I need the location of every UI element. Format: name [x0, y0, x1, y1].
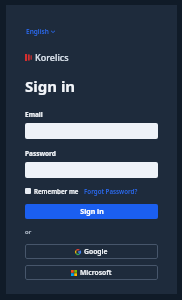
button[interactable]: Forgot Password? — [84, 187, 138, 195]
staticText: English — [26, 27, 49, 36]
staticText: Email — [25, 110, 43, 119]
staticText: Google — [84, 247, 108, 256]
staticText: Sign in — [80, 207, 104, 217]
staticText: Password — [25, 149, 56, 158]
staticText: Forgot Password? — [84, 187, 138, 195]
button[interactable]: English — [25, 26, 56, 37]
staticText: Sign in — [25, 76, 76, 96]
button[interactable]: Sign in — [25, 204, 158, 219]
button[interactable]: Google — [25, 244, 158, 259]
button[interactable]: Microsoft — [25, 265, 158, 280]
staticText: Remember me — [34, 187, 79, 195]
staticText: or — [25, 228, 32, 236]
button[interactable] — [25, 123, 158, 139]
staticText: Microsoft — [80, 268, 112, 277]
button[interactable]: Remember me — [25, 187, 79, 195]
button[interactable] — [25, 162, 158, 178]
staticText: Korelics — [35, 51, 69, 63]
